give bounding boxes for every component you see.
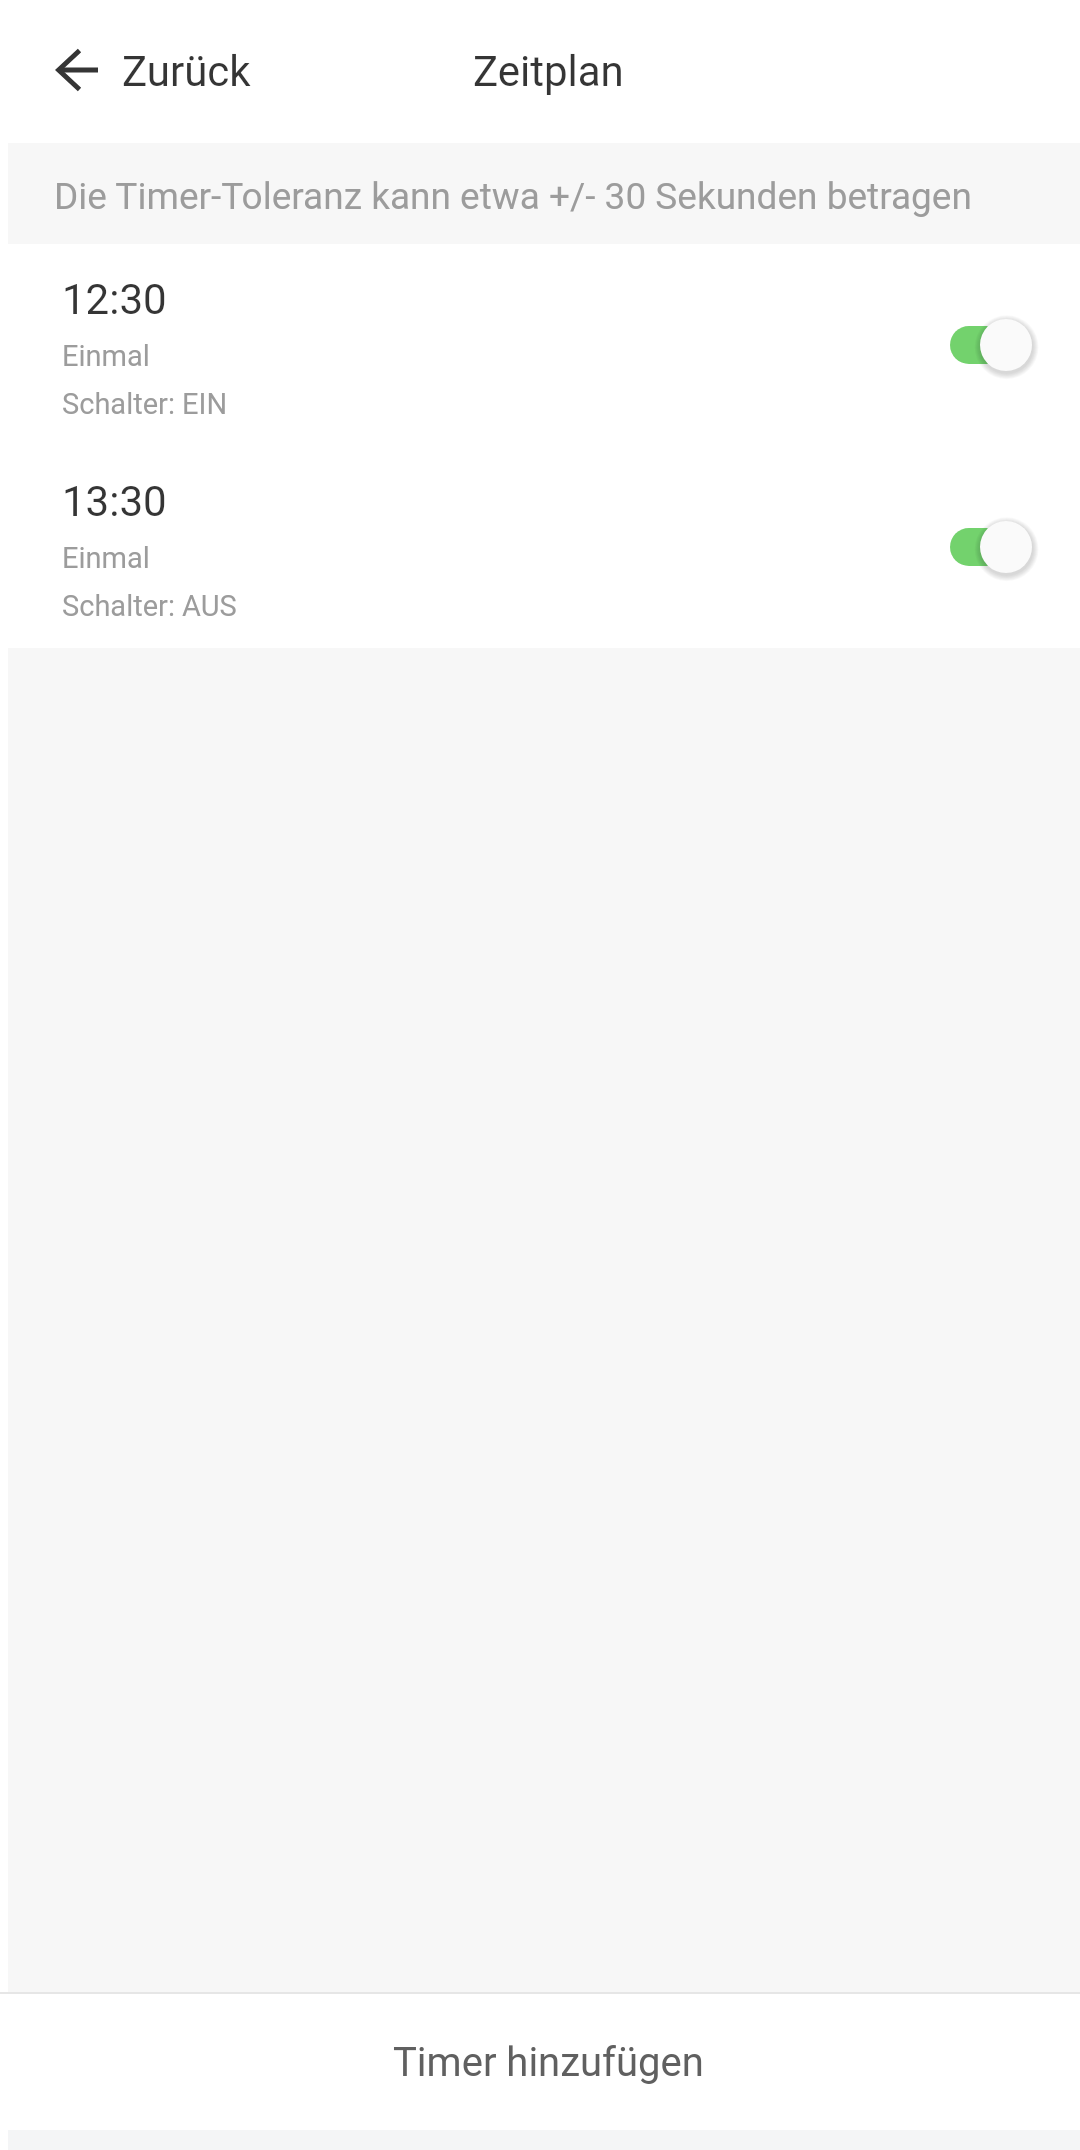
staticText: Schalter: EIN: [62, 387, 228, 421]
staticText: Timer hinzufügen: [393, 2039, 704, 2086]
staticText: Schalter: AUS: [62, 589, 237, 623]
button[interactable]: Toggle timer: [950, 308, 1036, 382]
button[interactable]: Timer hinzufügen: [0, 1994, 1080, 2130]
staticText: 12:30: [62, 275, 167, 324]
staticText: 13:30: [62, 477, 167, 526]
staticText: Einmal: [62, 339, 150, 373]
button[interactable]: 13:30: [0, 446, 1080, 648]
button[interactable]: 12:30: [0, 244, 1080, 446]
button[interactable]: Toggle timer: [950, 510, 1036, 584]
staticText: Einmal: [62, 541, 150, 575]
staticText: Zurück: [122, 47, 251, 96]
staticText: Zeitplan: [473, 47, 624, 96]
staticText: Die Timer-Toleranz kann etwa +/- 30 Seku…: [54, 175, 972, 218]
other: Back: [53, 49, 95, 91]
button[interactable]: Back: [0, 37, 275, 106]
